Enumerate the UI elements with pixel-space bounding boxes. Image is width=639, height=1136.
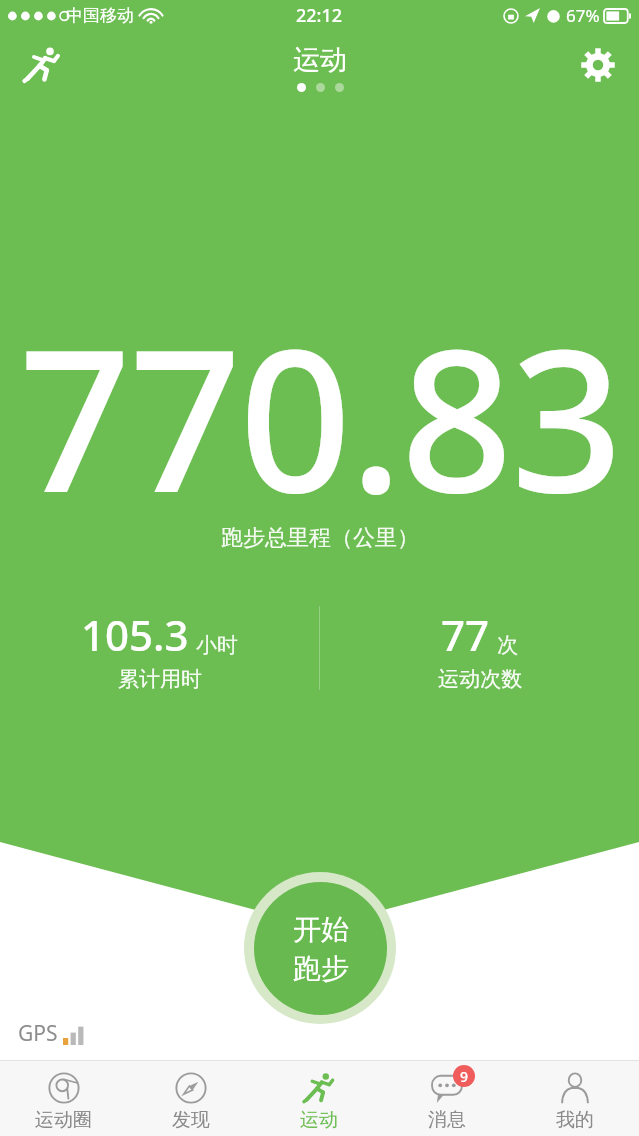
button[interactable]: 发现 <box>127 1065 255 1132</box>
staticText: 次 <box>497 632 518 658</box>
button[interactable]: 运动 <box>255 1065 383 1132</box>
staticText: 运动圈 <box>35 1108 92 1132</box>
staticText: 67% <box>566 4 600 27</box>
staticText: 运动 <box>300 1108 338 1132</box>
staticText: 累计用时 <box>118 666 202 692</box>
staticText: 运动次数 <box>438 666 522 692</box>
staticText: 跑步 <box>293 951 349 986</box>
staticText: 消息 <box>428 1108 466 1132</box>
staticText: 77 <box>441 606 490 663</box>
button[interactable]: 9 <box>383 1065 511 1132</box>
staticText: 跑步总里程（公里） <box>221 524 419 552</box>
staticText: 我的 <box>556 1108 594 1132</box>
staticText: 9 <box>460 1067 469 1086</box>
staticText: 中国移动 <box>66 5 134 26</box>
staticText: 运动 <box>293 43 347 77</box>
staticText: 开始 <box>293 912 349 947</box>
button[interactable]: 105.3 <box>0 606 319 692</box>
button[interactable]: 我的 <box>511 1065 639 1132</box>
button[interactable]: 开始 <box>244 872 396 1024</box>
button[interactable]: Settings <box>571 38 625 92</box>
staticText: GPS <box>18 1019 58 1048</box>
staticText: 105.3 <box>81 606 189 663</box>
staticText: 小时 <box>196 632 238 658</box>
button[interactable]: 运动圈 <box>0 1065 127 1132</box>
staticText: 22:12 <box>296 3 343 28</box>
button[interactable]: Running records <box>14 37 70 93</box>
staticText: 发现 <box>172 1108 210 1132</box>
button[interactable]: 77 <box>320 606 639 692</box>
staticText: 770.83 <box>19 282 621 549</box>
